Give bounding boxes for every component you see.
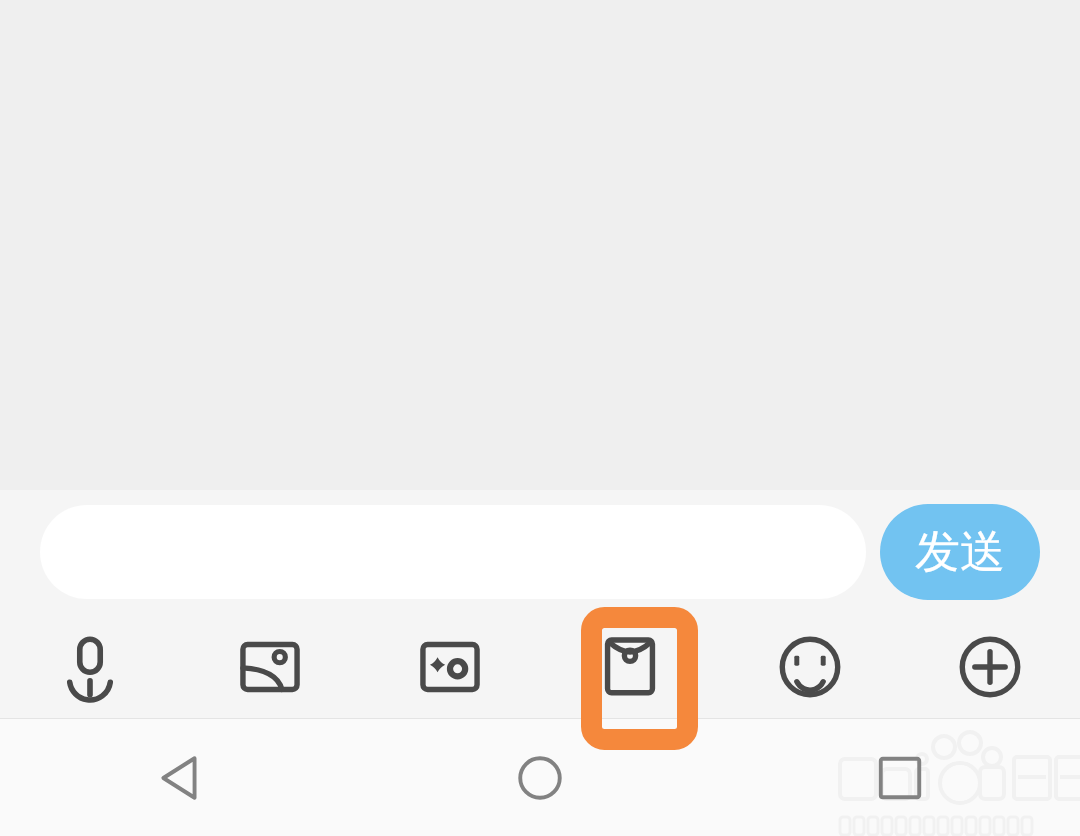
button[interactable]: Emoji [720,614,900,719]
button[interactable]: 发送 [880,504,1040,600]
button[interactable]: Home [360,719,720,836]
button[interactable]: Sticker camera [360,614,540,719]
button[interactable]: Picture [180,614,360,719]
button[interactable]: Back [0,719,360,836]
button[interactable]: More options [900,614,1080,719]
button[interactable]: Voice message [0,614,180,719]
staticText: 发送 [915,524,1005,581]
button[interactable]: Red envelope [540,614,720,719]
button[interactable]: Recent apps [720,719,1080,836]
